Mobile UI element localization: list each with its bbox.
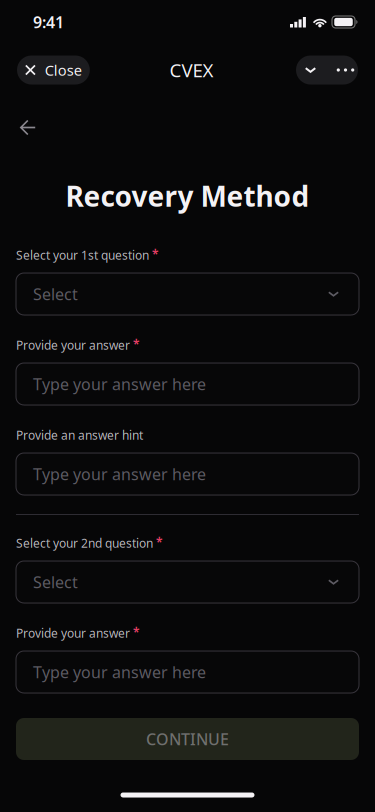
button[interactable]: Select: [16, 561, 359, 603]
staticText: Select: [33, 283, 78, 305]
staticText: Type your answer here: [33, 661, 206, 683]
button[interactable]: CONTINUE: [16, 718, 359, 760]
staticText: Close: [45, 60, 82, 80]
button[interactable]: More options: [325, 55, 358, 84]
staticText: CVEX: [169, 58, 213, 82]
button[interactable]: Type your answer here: [16, 651, 359, 693]
button[interactable]: Collapse: [296, 55, 325, 84]
staticText: *: [133, 624, 140, 640]
staticText: Provide an answer hint: [16, 427, 143, 443]
button[interactable]: Type your answer here: [16, 363, 359, 405]
staticText: *: [152, 246, 159, 262]
staticText: *: [156, 534, 163, 550]
staticText: Provide your answer: [16, 337, 130, 353]
staticText: Provide your answer: [16, 625, 130, 641]
staticText: Type your answer here: [33, 463, 206, 485]
button[interactable]: Select: [16, 273, 359, 315]
staticText: Select your 2nd question: [16, 535, 153, 551]
staticText: 9:41: [33, 11, 64, 33]
button[interactable]: Close: [17, 55, 90, 84]
button[interactable]: Type your answer here: [16, 453, 359, 495]
staticText: Select your 1st question: [16, 247, 149, 263]
staticText: CONTINUE: [146, 728, 229, 750]
staticText: Recovery Method: [65, 177, 309, 215]
staticText: Type your answer here: [33, 373, 206, 395]
staticText: *: [133, 336, 140, 352]
staticText: Select: [33, 571, 78, 593]
button[interactable]: Back: [10, 110, 46, 145]
